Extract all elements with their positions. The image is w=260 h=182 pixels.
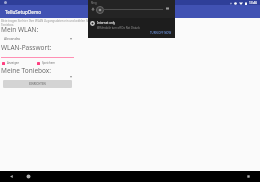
button[interactable]: Back — [8, 173, 15, 180]
button[interactable]: Home — [25, 173, 32, 180]
button[interactable] — [1, 74, 74, 80]
staticText: Meine Toniebox: — [1, 66, 52, 75]
staticText: 13:46 — [249, 1, 258, 5]
staticText: TelluSetupDemo — [5, 9, 42, 15]
button[interactable]: Speichern — [37, 61, 56, 65]
button[interactable]: Recent apps — [245, 173, 252, 180]
staticText: Anzeigen — [7, 61, 20, 65]
staticText: EINRICHTEN — [29, 82, 46, 86]
staticText: Wifi/mobile turn off Do Not Disturb — [97, 26, 140, 30]
staticText: Speichern — [42, 61, 56, 65]
button[interactable]: EINRICHTEN — [3, 80, 72, 88]
staticText: Internet only — [97, 21, 116, 25]
staticText: WLAN-Passwort: — [1, 43, 52, 52]
staticText: TURN OFF NOW — [150, 31, 172, 35]
staticText: Bitte tragen Sie hier Ihre WLAN Zugangsd… — [1, 19, 97, 26]
button[interactable]: TURN OFF NOW — [150, 31, 172, 35]
button[interactable]: Anzeigen — [2, 61, 20, 65]
staticText: Alexandra — [4, 36, 20, 41]
staticText: Mein WLAN: — [1, 25, 39, 34]
staticText: Ring — [91, 1, 97, 5]
button[interactable]: Alexandra — [1, 35, 74, 42]
